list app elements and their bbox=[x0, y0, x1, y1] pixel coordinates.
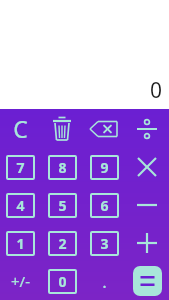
staticText: 5 bbox=[58, 196, 67, 215]
staticText: 6 bbox=[100, 196, 109, 215]
button[interactable]: 2 bbox=[41, 224, 83, 262]
button[interactable]: Multiply bbox=[125, 148, 169, 186]
button[interactable]: Backspace bbox=[83, 109, 125, 148]
button[interactable]: 7 bbox=[0, 148, 41, 186]
button[interactable]: C bbox=[0, 109, 41, 148]
button[interactable]: 9 bbox=[83, 148, 125, 186]
staticText: 8 bbox=[58, 158, 67, 177]
staticText: . bbox=[102, 270, 107, 293]
button[interactable]: 3 bbox=[83, 224, 125, 262]
button[interactable]: 5 bbox=[41, 186, 83, 224]
button[interactable]: 4 bbox=[0, 186, 41, 224]
button[interactable]: Equals bbox=[133, 266, 162, 296]
staticText: 9 bbox=[100, 158, 109, 177]
button[interactable]: 1 bbox=[0, 224, 41, 262]
button[interactable]: . bbox=[83, 262, 125, 300]
button[interactable]: 8 bbox=[41, 148, 83, 186]
button[interactable]: Clear all bbox=[41, 109, 83, 148]
staticText: C bbox=[13, 113, 28, 144]
staticText: 7 bbox=[16, 158, 25, 177]
button[interactable]: Minus bbox=[125, 186, 169, 224]
staticText: 4 bbox=[16, 196, 25, 215]
staticText: +/- bbox=[11, 271, 30, 291]
button[interactable]: 6 bbox=[83, 186, 125, 224]
staticText: 1 bbox=[16, 234, 25, 253]
button[interactable]: Plus bbox=[125, 224, 169, 262]
staticText: 3 bbox=[100, 234, 109, 253]
button[interactable]: +/- bbox=[0, 262, 41, 300]
staticText: 0 bbox=[150, 76, 163, 105]
staticText: 0 bbox=[58, 272, 67, 291]
staticText: 2 bbox=[58, 234, 67, 253]
button[interactable]: Divide bbox=[125, 109, 169, 148]
button[interactable]: 0 bbox=[41, 262, 83, 300]
